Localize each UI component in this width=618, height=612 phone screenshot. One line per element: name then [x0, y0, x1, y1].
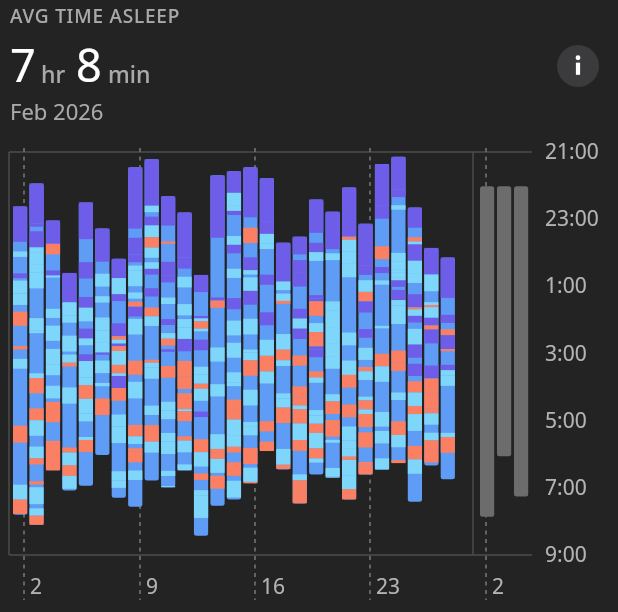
staticText: 5:00	[545, 406, 587, 435]
staticText: 7	[10, 34, 36, 95]
staticText: 23:00	[545, 204, 599, 233]
staticText: 23	[376, 572, 401, 601]
staticText: Feb 2026	[10, 96, 104, 126]
staticText: 1:00	[545, 271, 587, 300]
staticText: hr	[41, 58, 66, 89]
staticText: 2	[30, 572, 43, 601]
staticText: 3:00	[545, 339, 587, 368]
staticText: 7:00	[545, 473, 587, 502]
staticText: 8	[76, 34, 102, 95]
staticText: min	[108, 58, 151, 89]
staticText: 9:00	[545, 540, 587, 569]
staticText: 9	[146, 572, 159, 601]
staticText: 21:00	[545, 137, 599, 166]
staticText: 2	[492, 572, 505, 601]
staticText: 16	[261, 572, 286, 601]
staticText: AVG TIME ASLEEP	[10, 3, 181, 29]
button[interactable]: Info	[557, 45, 599, 87]
